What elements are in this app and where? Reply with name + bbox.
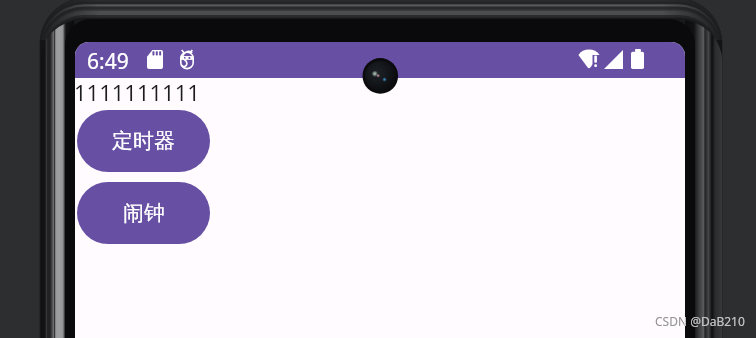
other: SD card xyxy=(147,50,163,69)
button[interactable]: 定时器 xyxy=(77,110,210,172)
other: Battery xyxy=(631,49,644,69)
other: Signal xyxy=(604,50,623,69)
staticText: 闹钟 xyxy=(123,200,165,226)
staticText: CSDN @DaB210 xyxy=(655,313,745,329)
staticText: 定时器 xyxy=(112,128,175,154)
staticText: 1111111111 xyxy=(75,77,200,107)
other: USB debugging xyxy=(180,50,194,69)
other: Wi-Fi xyxy=(578,49,600,69)
staticText: CSDN @DaB210 xyxy=(655,313,745,329)
button[interactable]: 闹钟 xyxy=(77,182,210,244)
staticText: 6:49 xyxy=(87,47,129,76)
